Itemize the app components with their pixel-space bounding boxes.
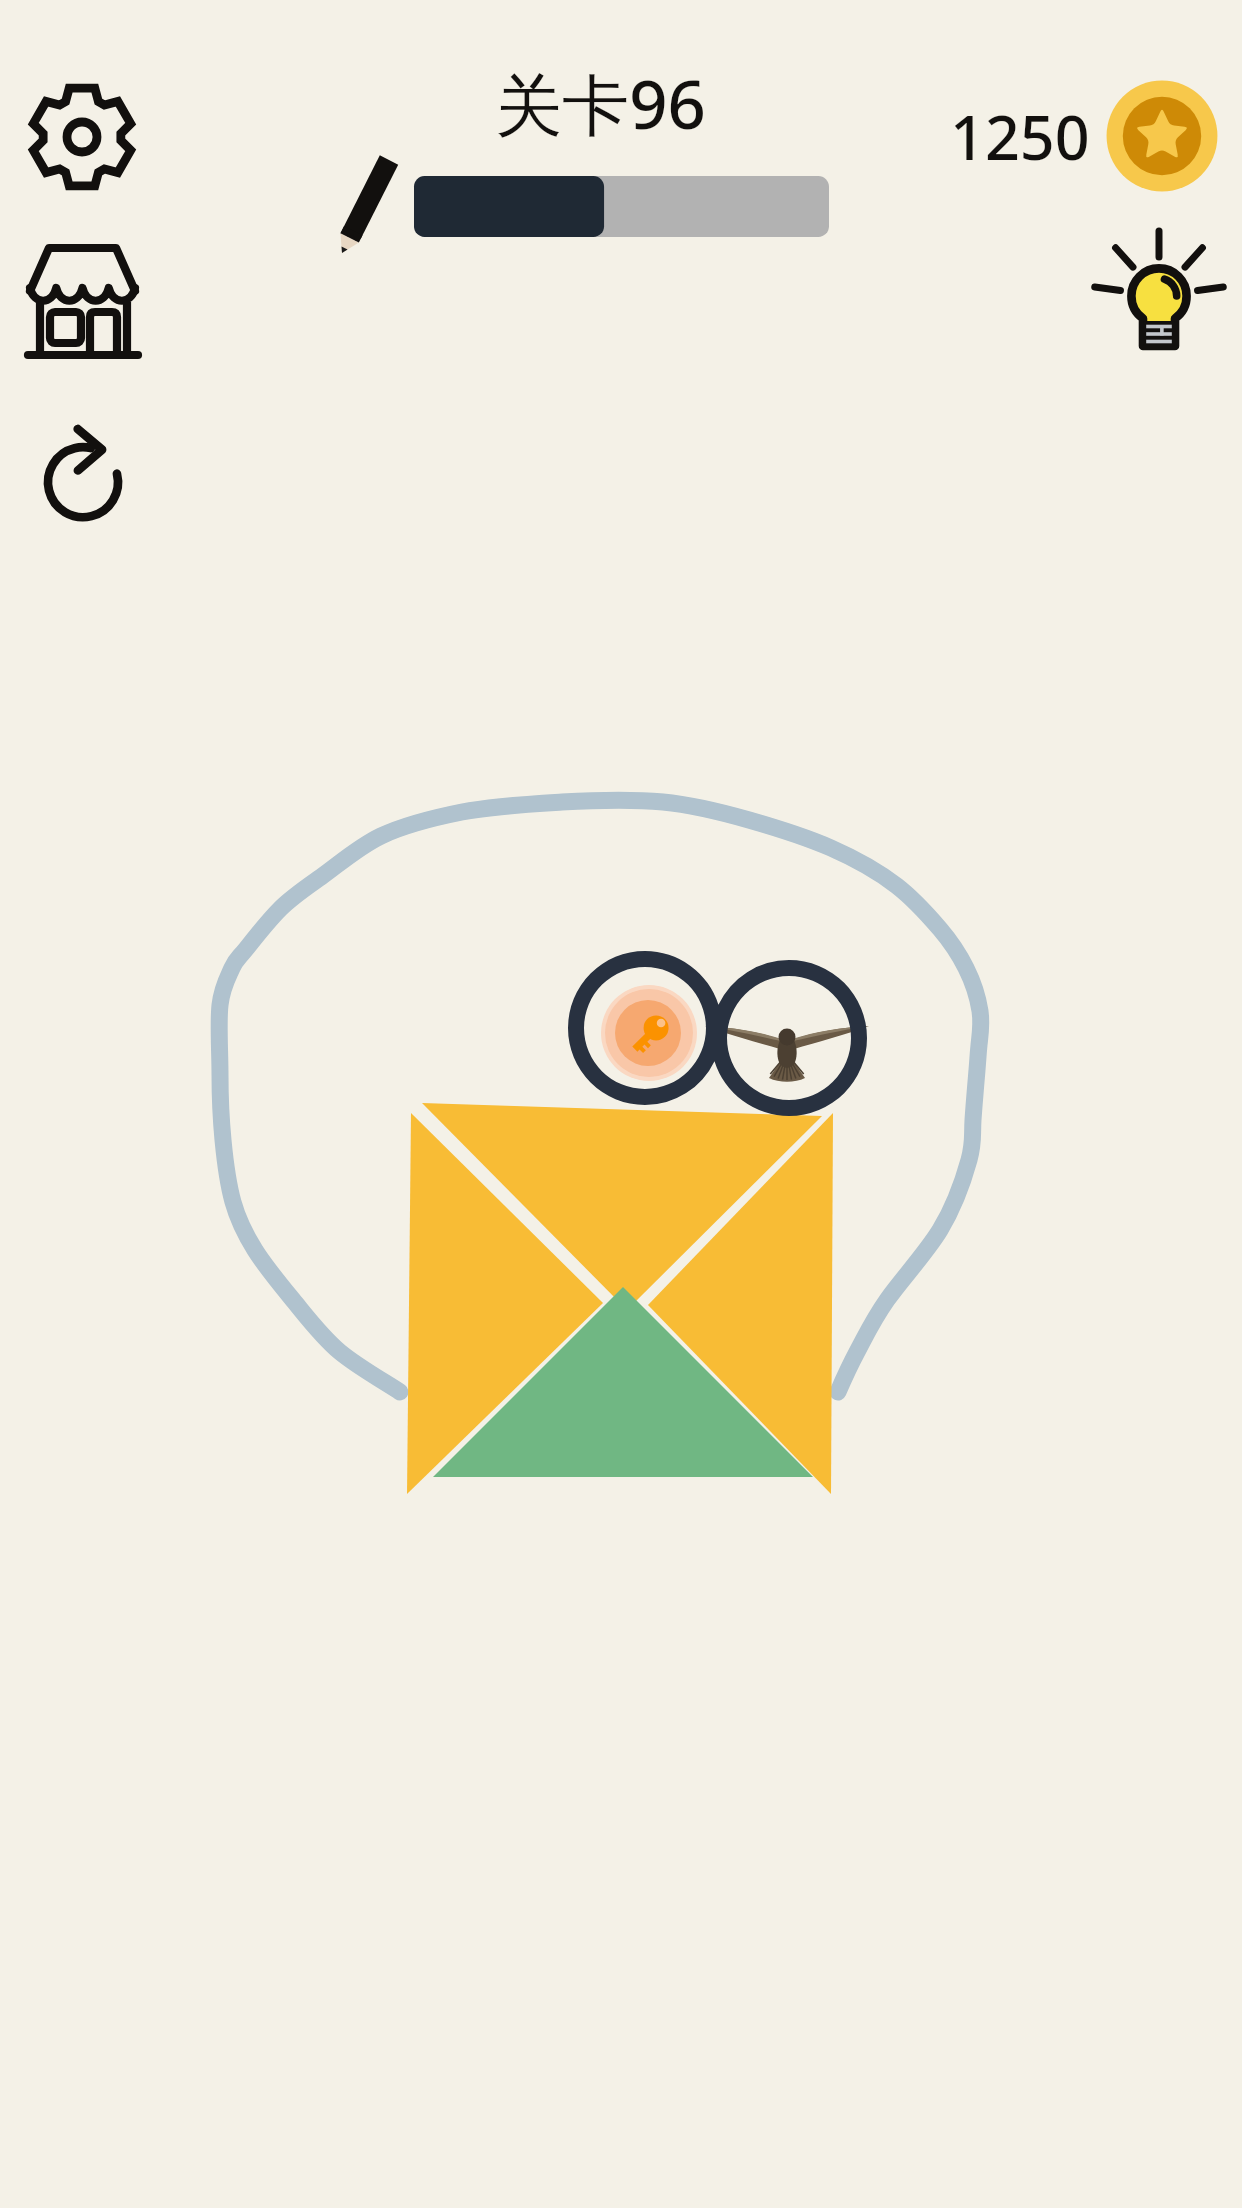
staticText: 关卡96 — [495, 57, 706, 147]
staticText: 1250 — [950, 95, 1090, 178]
button[interactable]: Envelope puzzle piece — [407, 1100, 834, 1495]
button[interactable]: Binoculars — [568, 950, 868, 1117]
button[interactable]: Shop — [28, 244, 138, 362]
button[interactable]: Restart — [30, 412, 136, 518]
button[interactable]: 1250 — [950, 80, 1218, 192]
button[interactable]: Settings — [24, 79, 140, 195]
button[interactable]: Hint — [1085, 226, 1215, 356]
